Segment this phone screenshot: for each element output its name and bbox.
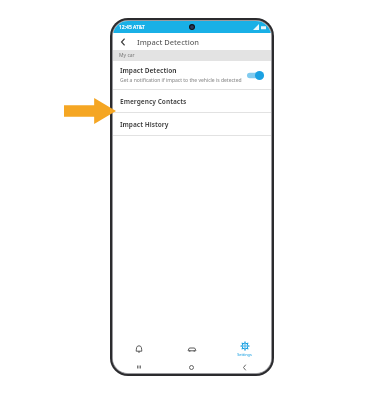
button[interactable]: Impact Detection toggle xyxy=(247,71,264,80)
button[interactable]: Vehicle xyxy=(165,337,218,361)
button[interactable]: Impact History xyxy=(113,113,271,135)
staticText: Emergency Contacts xyxy=(120,97,187,106)
button[interactable]: Home xyxy=(165,361,218,373)
staticText: Settings xyxy=(237,352,252,357)
button[interactable]: Recents xyxy=(113,361,165,373)
button[interactable]: Emergency Contacts xyxy=(113,90,271,112)
staticText: 12:45 AT&T xyxy=(119,24,145,31)
button[interactable]: Back xyxy=(218,361,271,373)
staticText: Impact Detection xyxy=(120,66,177,75)
staticText: Impact Detection xyxy=(137,37,200,47)
button[interactable]: Alerts xyxy=(113,337,165,361)
staticText: Impact History xyxy=(120,120,169,129)
button[interactable]: Impact Detection xyxy=(113,61,271,89)
button[interactable]: Back xyxy=(116,35,130,49)
staticText: My car xyxy=(119,52,135,59)
button[interactable]: Settings xyxy=(218,337,271,361)
staticText: Get a notification if impact to the vehi… xyxy=(120,77,242,84)
